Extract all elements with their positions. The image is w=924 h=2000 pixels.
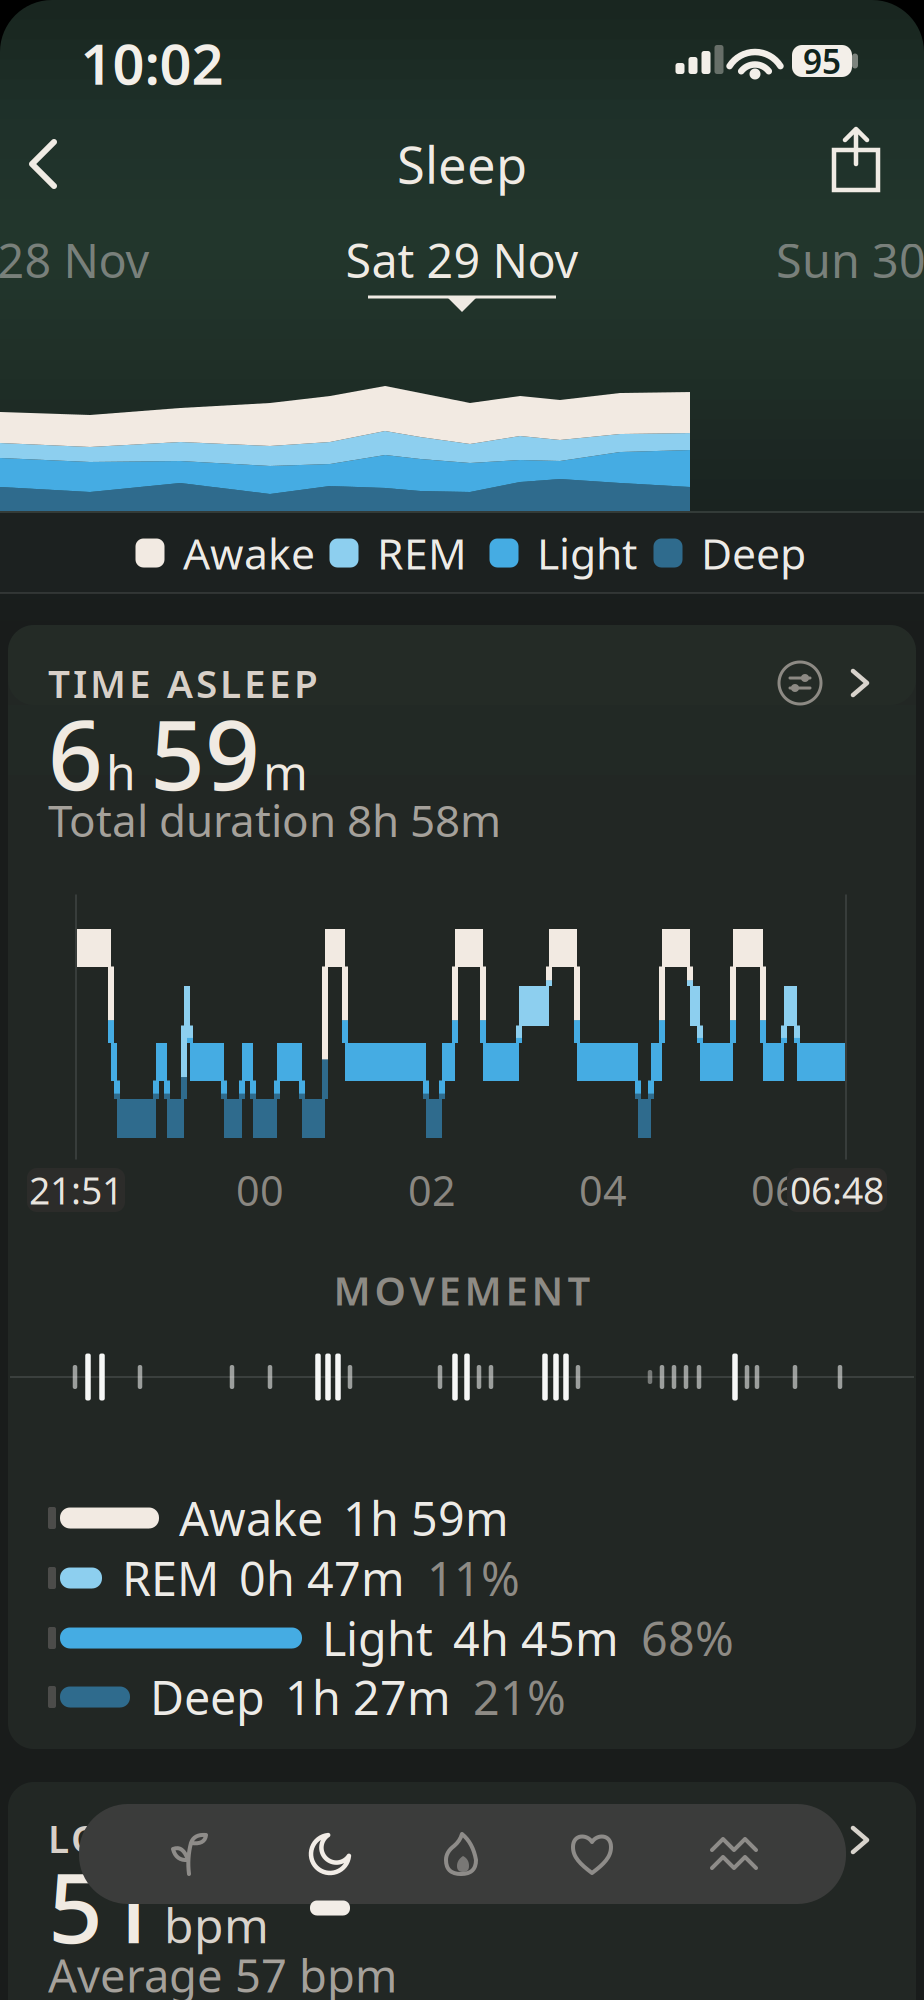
- button[interactable]: [123, 1806, 257, 1902]
- button[interactable]: [525, 1807, 659, 1903]
- staticText: Total duration 8h 58m: [48, 791, 501, 849]
- button[interactable]: [263, 1806, 397, 1902]
- staticText: Light: [322, 1607, 433, 1669]
- staticText: Awake: [179, 1487, 323, 1549]
- staticText: Deep: [701, 525, 806, 581]
- staticText: 06: [751, 1163, 799, 1217]
- staticText: 10:02: [80, 26, 223, 100]
- staticText: REM: [122, 1547, 219, 1609]
- staticText: 06:48: [790, 1165, 884, 1215]
- staticText: MOVEMENT: [333, 1263, 590, 1316]
- staticText: bpm: [164, 1893, 269, 1956]
- staticText: Sun 30 Nov: [776, 229, 924, 291]
- staticText: 59: [150, 689, 260, 817]
- staticText: 21%: [473, 1666, 566, 1728]
- staticText: Light: [537, 525, 637, 581]
- button[interactable]: [13, 134, 73, 194]
- button[interactable]: Sat 29 Nov: [282, 230, 642, 290]
- button[interactable]: [840, 663, 880, 703]
- staticText: 21:51: [29, 1165, 123, 1215]
- staticText: Fri 28 Nov: [0, 229, 149, 291]
- staticText: 04: [579, 1163, 627, 1217]
- staticText: 0h 47m: [239, 1547, 405, 1609]
- staticText: TIME ASLEEP: [48, 657, 318, 709]
- button[interactable]: [779, 662, 821, 704]
- staticText: 02: [408, 1163, 456, 1217]
- staticText: 11%: [427, 1547, 520, 1609]
- staticText: Average 57 bpm: [48, 1945, 397, 2000]
- staticText: m: [263, 740, 308, 803]
- staticText: 95: [803, 39, 841, 83]
- staticText: Awake: [183, 525, 315, 581]
- staticText: Sleep: [397, 130, 527, 198]
- button[interactable]: [667, 1806, 801, 1902]
- button[interactable]: [840, 1820, 880, 1860]
- staticText: 00: [236, 1163, 284, 1217]
- staticText: Deep: [150, 1666, 265, 1728]
- staticText: 1h 59m: [343, 1487, 509, 1549]
- staticText: 51: [48, 1842, 158, 1970]
- button[interactable]: [394, 1806, 528, 1902]
- button[interactable]: [826, 128, 886, 192]
- staticText: 4h 45m: [453, 1607, 619, 1669]
- staticText: Sat 29 Nov: [345, 229, 578, 291]
- staticText: 68%: [641, 1607, 734, 1669]
- staticText: 1h 27m: [285, 1666, 451, 1728]
- staticText: 6: [48, 689, 103, 817]
- staticText: REM: [377, 525, 467, 581]
- staticText: LOWEST HEART RATE: [48, 1812, 484, 1864]
- staticText: h: [106, 740, 136, 803]
